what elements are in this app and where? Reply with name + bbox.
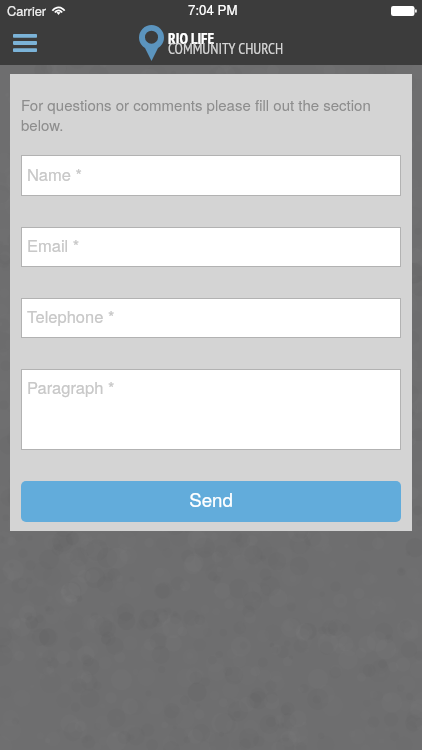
staticText: Telephone * xyxy=(27,304,115,328)
staticText: Email * xyxy=(27,233,80,257)
staticText: Send xyxy=(189,486,233,513)
button[interactable]: Open navigation menu xyxy=(7,25,42,60)
staticText: Paragraph * xyxy=(27,375,115,399)
button[interactable]: Paragraph * xyxy=(21,369,401,450)
button[interactable]: Send xyxy=(21,481,401,522)
button[interactable]: Telephone * xyxy=(21,298,401,338)
staticText: 7:04 PM xyxy=(188,0,238,19)
button[interactable]: Email * xyxy=(21,227,401,267)
button[interactable]: Name * xyxy=(21,155,401,196)
staticText: Name * xyxy=(27,162,82,186)
staticText: For questions or comments please fill ou… xyxy=(21,94,401,136)
staticText: Carrier xyxy=(7,1,47,19)
staticText: COMMUNITY CHURCH xyxy=(168,39,284,59)
staticText: RIO LIFE xyxy=(168,28,215,48)
